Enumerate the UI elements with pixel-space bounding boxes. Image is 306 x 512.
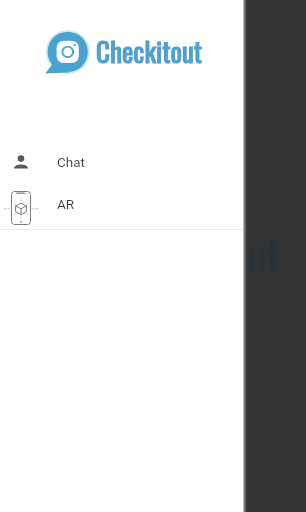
other: AR: [3, 190, 39, 226]
button[interactable]: AR: [0, 184, 244, 229]
staticText: Chat: [57, 154, 85, 170]
button[interactable]: Chat: [0, 139, 244, 184]
other: Chat: [11, 151, 31, 171]
staticText: Checkitout: [96, 31, 203, 71]
staticText: Checkitout: [107, 221, 280, 286]
staticText: AR: [57, 196, 75, 212]
